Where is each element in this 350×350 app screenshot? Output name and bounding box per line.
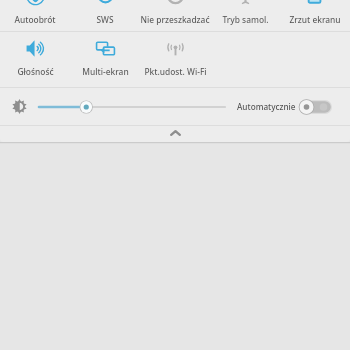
- button[interactable]: [39, 97, 225, 117]
- staticText: Głośność: [17, 66, 54, 77]
- button[interactable]: Pkt.udost. Wi-Fi: [140, 0, 210, 142]
- staticText: Multi-ekran: [82, 66, 129, 77]
- button[interactable]: Autoobrót: [0, 0, 70, 142]
- button[interactable]: Zrzut ekranu: [280, 0, 350, 142]
- staticText: Zrzut ekranu: [289, 14, 341, 25]
- staticText: Pkt.udost. Wi-Fi: [144, 66, 207, 77]
- other: Brightness: [12, 99, 27, 114]
- button[interactable]: Automatic brightness toggle: [299, 100, 332, 114]
- staticText: Nie przeszkadzać: [140, 14, 210, 25]
- staticText: SWS: [96, 14, 114, 25]
- staticText: Autoobrót: [14, 14, 56, 25]
- button[interactable]: Głośność: [0, 0, 70, 142]
- button[interactable]: Collapse quick settings: [0, 125, 350, 142]
- button[interactable]: SWS: [70, 0, 140, 142]
- staticText: Automatycznie: [237, 101, 296, 112]
- button[interactable]: Tryb samol.: [210, 0, 280, 142]
- staticText: Tryb samol.: [222, 14, 269, 25]
- button[interactable]: Nie przeszkadzać: [140, 0, 210, 142]
- button[interactable]: Multi-ekran: [70, 0, 140, 142]
